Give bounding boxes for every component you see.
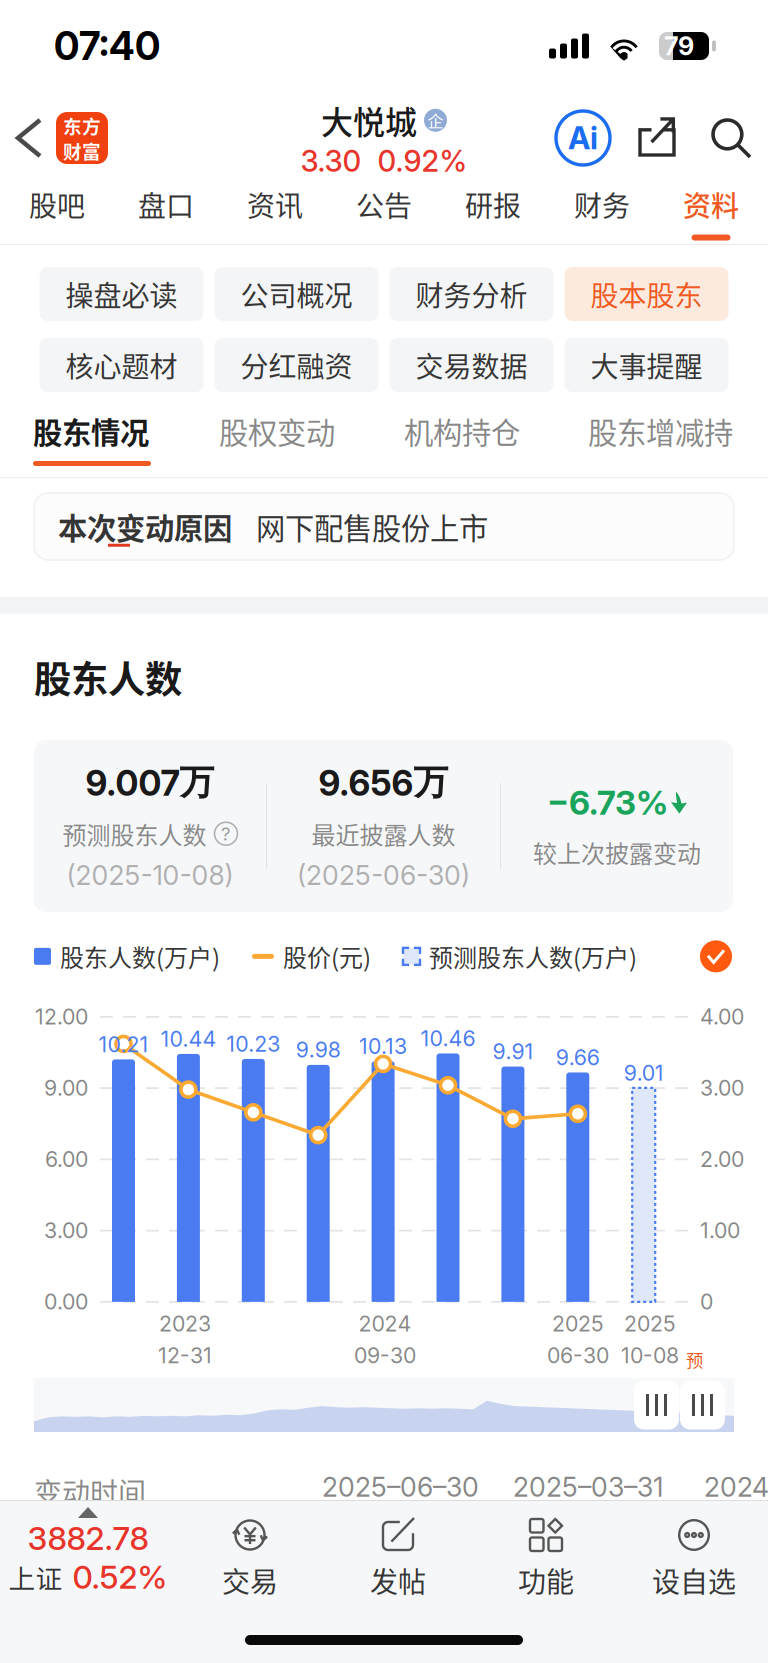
staticText: 本次变动原因 (58, 505, 232, 548)
staticText: 大事提醒 (590, 345, 702, 385)
staticText: 2024– (704, 1471, 768, 1503)
button[interactable]: 显示预测 (700, 940, 732, 972)
button[interactable]: 盘口 (111, 184, 220, 244)
staticText: 10.13 (359, 1033, 407, 1059)
staticText: 股本股东 (590, 274, 702, 314)
button[interactable]: 核心题材 (39, 338, 203, 392)
button[interactable]: 调整区间 (680, 1380, 725, 1429)
button[interactable]: 研报 (438, 184, 547, 244)
staticText: 变动时间 (34, 1471, 146, 1511)
staticText: 预测股东人数 (62, 816, 206, 851)
staticText: 财务 (574, 184, 630, 224)
button[interactable]: 财务分析 (389, 267, 553, 321)
staticText: ? (221, 822, 231, 845)
staticText: 4.00 (700, 1004, 744, 1030)
staticText: 10-08 (621, 1343, 679, 1368)
staticText: 2024 (358, 1311, 411, 1337)
staticText: 核心题材 (65, 345, 177, 385)
button[interactable]: 搜索 (694, 92, 768, 184)
button[interactable]: 股东情况 (31, 400, 153, 478)
button[interactable]: 本次变动原因 (34, 493, 734, 560)
button[interactable]: 操盘必读 (39, 267, 203, 321)
staticText: 3.30 (300, 143, 361, 179)
staticText: 较上次披露变动 (533, 835, 701, 870)
staticText: 9.91 (492, 1039, 533, 1064)
button[interactable]: 股吧 (2, 184, 111, 244)
button[interactable]: AI 助手 (546, 92, 620, 184)
staticText: 交易数据 (415, 345, 527, 385)
staticText: 9.00 (44, 1075, 88, 1101)
staticText: 2025 (624, 1311, 676, 1337)
staticText: 分红融资 (240, 345, 352, 385)
button[interactable]: 功能 (472, 1501, 620, 1604)
button[interactable]: 股东增减持 (586, 400, 735, 478)
button[interactable]: 分红融资 (214, 338, 378, 392)
staticText: 07:40 (54, 23, 160, 69)
staticText: 企 (427, 109, 443, 132)
staticText: 股吧 (29, 184, 85, 224)
staticText: 10.44 (160, 1026, 216, 1052)
staticText: 09-30 (354, 1343, 416, 1368)
staticText: 9.66 (556, 1044, 600, 1070)
button[interactable]: 交易 (176, 1501, 324, 1604)
staticText: 0.52% (72, 1558, 167, 1596)
staticText: 0.92% (377, 143, 467, 179)
staticText: 资料 (683, 184, 739, 224)
staticText: 股东情况 (33, 410, 149, 452)
button[interactable]: 股本股东 (564, 267, 728, 321)
staticText: 机构持仓 (404, 410, 520, 452)
button[interactable]: Back (0, 92, 56, 184)
button[interactable]: 3882.78 (0, 1501, 176, 1604)
button[interactable]: 机构持仓 (402, 400, 522, 478)
staticText: 公告 (356, 184, 412, 224)
staticText: 网下配售股份上市 (256, 505, 488, 548)
button[interactable]: 调整区间 (634, 1380, 679, 1429)
button[interactable]: 交易数据 (389, 338, 553, 392)
staticText: 操盘必读 (65, 274, 177, 314)
staticText: 功能 (518, 1560, 574, 1600)
staticText: 最近披露人数 (311, 816, 455, 851)
staticText: 东方 (63, 112, 101, 139)
staticText: 股东增减持 (588, 410, 733, 452)
staticText: 9.656万 (318, 761, 448, 804)
staticText: 盘口 (138, 184, 194, 224)
staticText: 0.00 (44, 1289, 88, 1315)
staticText: 6.00 (45, 1146, 88, 1172)
staticText: 股东人数 (34, 650, 182, 704)
staticText: 2025 (552, 1311, 604, 1337)
staticText: 2.00 (700, 1146, 744, 1172)
button[interactable]: 公司概况 (214, 267, 378, 321)
button[interactable]: 财务 (547, 184, 656, 244)
staticText: 上证 (8, 1558, 62, 1596)
button[interactable]: 公告 (329, 184, 438, 244)
staticText: 12.00 (35, 1004, 88, 1030)
button[interactable]: 股权变动 (217, 400, 337, 478)
staticText: Ai (568, 119, 598, 156)
staticText: 10.23 (226, 1031, 280, 1057)
button[interactable]: 东方财富 (56, 112, 108, 164)
staticText: 12-31 (158, 1343, 212, 1368)
staticText: 9.98 (296, 1037, 341, 1063)
staticText: (2025-06-30) (297, 859, 470, 891)
staticText: 财富 (63, 137, 101, 164)
staticText: 股价(元) (283, 939, 371, 974)
staticText: (2025-10-08) (66, 859, 233, 891)
staticText: 9.007万 (85, 761, 214, 804)
staticText: 财务分析 (415, 274, 527, 314)
staticText: 研报 (465, 184, 521, 224)
staticText: 2025–06–30 (322, 1471, 479, 1503)
button[interactable]: 分享 (620, 92, 694, 184)
staticText: 06-30 (547, 1343, 609, 1368)
button[interactable]: 大事提醒 (564, 338, 728, 392)
button[interactable]: 发帖 (324, 1501, 472, 1604)
staticText: 3.00 (700, 1075, 744, 1101)
staticText: 股权变动 (219, 410, 335, 452)
button[interactable]: 资讯 (220, 184, 329, 244)
staticText: 大悦城 (321, 97, 417, 143)
staticText: 公司概况 (240, 274, 352, 314)
button[interactable]: 资料 (656, 184, 765, 244)
button[interactable]: 设自选 (620, 1501, 768, 1604)
staticText: 预测股东人数(万户) (429, 939, 637, 974)
staticText: 1.00 (700, 1218, 740, 1243)
staticText: 3882.78 (27, 1519, 148, 1558)
